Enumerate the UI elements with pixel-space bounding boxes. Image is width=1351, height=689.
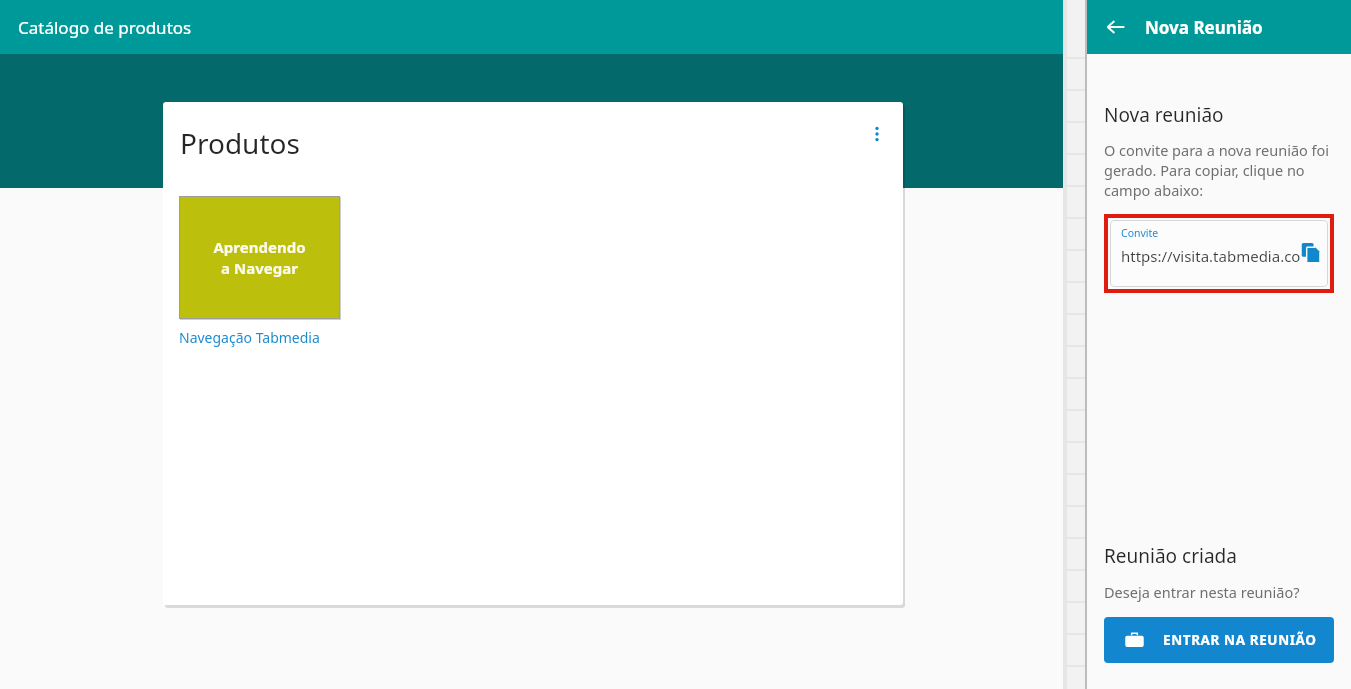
button[interactable]: Mais opções bbox=[859, 116, 895, 152]
button[interactable]: Navegação Tabmedia bbox=[179, 328, 320, 347]
staticText: O convite para a nova reunião foi gerado… bbox=[1104, 140, 1334, 200]
staticText: Nova Reunião bbox=[1145, 16, 1263, 39]
staticText: ENTRAR NA REUNIÃO bbox=[1163, 631, 1317, 649]
button[interactable]: ENTRAR NA REUNIÃO bbox=[1104, 617, 1334, 663]
button[interactable]: Copiar convite bbox=[1295, 237, 1325, 267]
staticText: Navegação Tabmedia bbox=[179, 328, 320, 347]
staticText: https://visita.tabmedia.co bbox=[1121, 246, 1301, 266]
button[interactable]: Voltar bbox=[1101, 12, 1131, 42]
staticText: Produtos bbox=[180, 124, 300, 162]
staticText: Reunião criada bbox=[1104, 543, 1237, 569]
staticText: Convite bbox=[1121, 226, 1159, 240]
staticText: Deseja entrar nesta reunião? bbox=[1104, 582, 1300, 602]
staticText: Catálogo de produtos bbox=[18, 16, 192, 39]
button[interactable]: Aprendendo a Navegar bbox=[179, 196, 340, 319]
staticText: Aprendendo a Navegar bbox=[213, 237, 306, 279]
button[interactable]: Convite bbox=[1110, 220, 1328, 287]
staticText: Nova reunião bbox=[1104, 102, 1224, 128]
